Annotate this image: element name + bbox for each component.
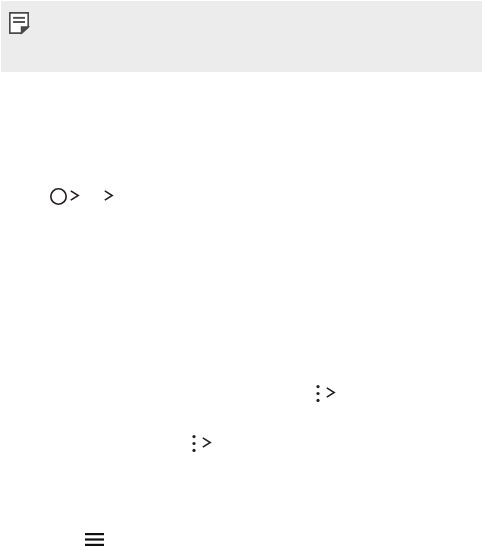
button[interactable]: Notes bbox=[9, 12, 29, 34]
button[interactable]: Menu bbox=[85, 533, 104, 546]
button[interactable]: Open folder bbox=[0, 181, 483, 211]
button[interactable]: More options bbox=[0, 428, 483, 458]
button[interactable]: More options bbox=[0, 378, 483, 408]
